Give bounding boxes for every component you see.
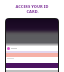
button[interactable] (6, 19, 58, 72)
staticText: CARD. (26, 9, 39, 14)
staticText: ACCESS YOUR ID (15, 4, 49, 9)
